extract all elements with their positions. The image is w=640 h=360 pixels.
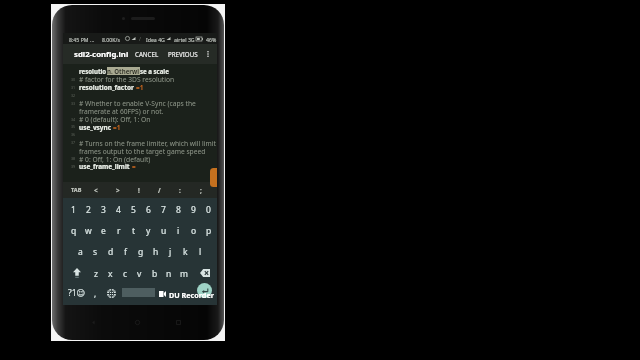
staticText: /: [158, 186, 161, 195]
button[interactable]: 8: [171, 199, 186, 220]
staticText: sdl2-config.ini: [74, 49, 129, 60]
button[interactable]: n: [161, 263, 176, 284]
button[interactable]: 7: [156, 199, 171, 220]
staticText: n. Otherwi: [107, 67, 140, 75]
button[interactable]: v: [132, 263, 147, 284]
staticText: 38: [71, 156, 76, 161]
staticText: w: [85, 225, 92, 237]
button[interactable]: 6: [141, 199, 156, 220]
button[interactable]: Home: [132, 317, 142, 327]
staticText: e: [101, 225, 106, 237]
staticText: i: [177, 225, 180, 237]
button[interactable]: e: [96, 220, 111, 241]
staticText: PREVIOUS: [168, 50, 198, 58]
staticText: 9: [191, 204, 196, 216]
button[interactable]: w: [81, 220, 96, 241]
staticText: 8: [176, 204, 181, 216]
staticText: 6: [146, 204, 151, 216]
button[interactable]: More options: [202, 48, 214, 60]
staticText: o: [191, 225, 197, 237]
button[interactable]: c: [118, 263, 133, 284]
button[interactable]: sdl2-config.ini: [74, 45, 129, 63]
button[interactable]: <: [86, 182, 106, 198]
button[interactable]: PREVIOUS: [165, 45, 201, 63]
staticText: 37: [71, 140, 76, 145]
button[interactable]: ;: [191, 182, 211, 198]
staticText: c: [123, 268, 128, 280]
button[interactable]: TAB: [66, 182, 86, 198]
button[interactable]: Backspace: [198, 263, 212, 283]
staticText: g: [138, 246, 144, 258]
button[interactable]: o: [186, 220, 201, 241]
staticText: ,: [94, 288, 97, 299]
button[interactable]: l: [193, 241, 208, 262]
staticText: 32: [71, 93, 76, 98]
button[interactable]: !: [129, 182, 149, 198]
button[interactable]: k: [178, 241, 193, 262]
staticText: 35: [71, 124, 76, 129]
staticText: u: [161, 225, 167, 237]
button[interactable]: Recents: [173, 317, 183, 327]
staticText: :: [179, 186, 181, 195]
button[interactable]: CANCEL: [132, 45, 162, 63]
button[interactable]: d: [103, 241, 118, 262]
button[interactable]: /: [149, 182, 169, 198]
button[interactable]: i: [171, 220, 186, 241]
button[interactable]: 3: [96, 199, 111, 220]
staticText: # factor for the 3DS resolution: [79, 75, 175, 84]
staticText: 2: [86, 204, 91, 216]
button[interactable]: ?1☺: [66, 283, 88, 303]
button[interactable]: 4: [111, 199, 126, 220]
button[interactable]: j: [163, 241, 178, 262]
button[interactable]: b: [147, 263, 162, 284]
staticText: z: [94, 268, 98, 280]
button[interactable]: z: [88, 263, 103, 284]
button[interactable]: ,: [89, 283, 101, 303]
button[interactable]: :: [170, 182, 190, 198]
button[interactable]: 5: [126, 199, 141, 220]
button[interactable]: 1: [66, 199, 81, 220]
staticText: 46%: [206, 36, 217, 43]
button[interactable]: f: [118, 241, 133, 262]
button[interactable]: a: [73, 241, 88, 262]
staticText: use_frame_limit: [79, 162, 132, 171]
staticText: p: [206, 225, 212, 237]
staticText: x: [108, 268, 113, 280]
staticText: framerate at 60FPS) or not.: [79, 107, 164, 116]
staticText: f: [124, 246, 127, 258]
button[interactable]: t: [126, 220, 141, 241]
staticText: =1: [136, 83, 144, 92]
button[interactable]: s: [88, 241, 103, 262]
button[interactable]: g: [133, 241, 148, 262]
button[interactable]: 2: [81, 199, 96, 220]
staticText: 36: [71, 132, 76, 137]
staticText: # Whether to enable V-Sync (caps the: [79, 99, 196, 108]
staticText: h: [153, 246, 159, 258]
staticText: <: [94, 186, 98, 195]
button[interactable]: Shift: [70, 263, 84, 283]
button[interactable]: 0: [201, 199, 216, 220]
button[interactable]: u: [156, 220, 171, 241]
button[interactable]: Enter: [197, 283, 212, 298]
staticText: ?1☺: [68, 287, 86, 299]
button[interactable]: 9: [186, 199, 201, 220]
staticText: 8.00K/s: [102, 36, 120, 43]
staticText: 33: [71, 101, 76, 106]
button[interactable]: Change language: [104, 283, 118, 303]
button[interactable]: p: [201, 220, 216, 241]
staticText: CANCEL: [135, 50, 159, 58]
staticText: d: [108, 246, 114, 258]
button[interactable]: r: [111, 220, 126, 241]
button[interactable]: x: [103, 263, 118, 284]
staticText: 8:45 PM: [69, 36, 89, 43]
button[interactable]: >: [108, 182, 128, 198]
button[interactable]: m: [176, 263, 191, 284]
button[interactable]: y: [141, 220, 156, 241]
button[interactable]: q: [66, 220, 81, 241]
button[interactable]: h: [148, 241, 163, 262]
staticText: 7: [161, 204, 166, 216]
staticText: 31: [71, 85, 76, 90]
staticText: Idea 4G: [146, 36, 165, 43]
